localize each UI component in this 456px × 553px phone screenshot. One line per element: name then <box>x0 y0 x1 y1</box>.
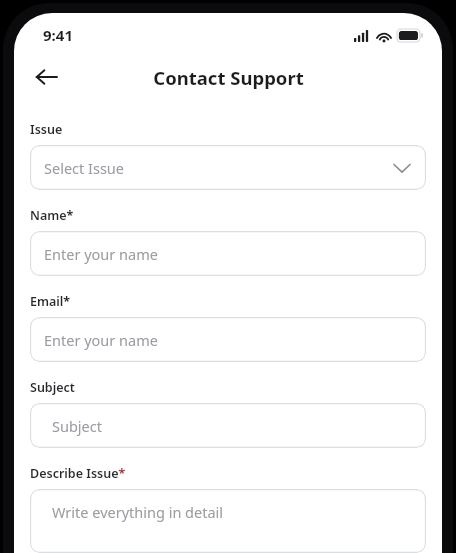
button[interactable]: Select Issue <box>30 145 426 190</box>
staticText: Subject <box>52 416 102 436</box>
staticText: Name* <box>30 207 74 224</box>
staticText: Enter your name <box>44 330 158 350</box>
staticText: Enter your name <box>44 244 158 264</box>
button[interactable]: Subject <box>30 403 426 448</box>
staticText: Contact Support <box>153 65 304 90</box>
button[interactable]: Enter your name <box>30 231 426 276</box>
staticText: Select Issue <box>44 158 124 178</box>
staticText: Write everything in detail <box>52 502 224 522</box>
button[interactable]: Write everything in detail <box>30 489 426 553</box>
staticText: Subject <box>30 379 75 396</box>
button[interactable]: Enter your name <box>30 317 426 362</box>
staticText: Describe Issue* <box>30 465 126 482</box>
staticText: 9:41 <box>43 25 73 45</box>
staticText: Email* <box>30 293 71 310</box>
staticText: Issue <box>30 121 63 138</box>
button[interactable]: Back <box>26 57 66 97</box>
